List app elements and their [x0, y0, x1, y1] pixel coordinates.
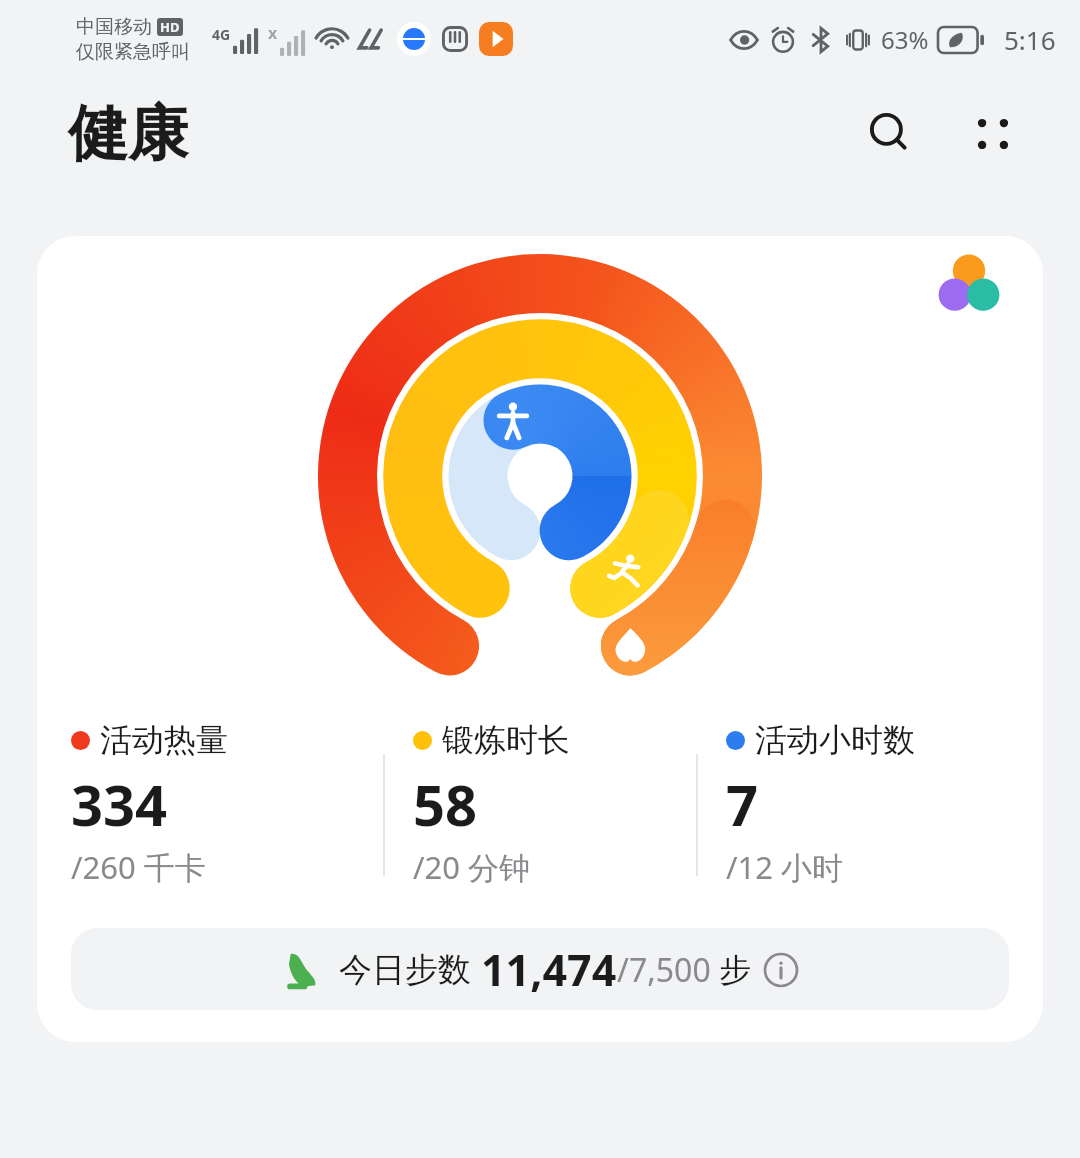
button[interactable]: Health profiles [895, 236, 1043, 332]
staticText: 63% [881, 23, 929, 56]
button[interactable]: 活动热量 [71, 720, 383, 904]
button[interactable]: 活动小时数 [698, 720, 1009, 904]
button[interactable]: Search [854, 97, 928, 171]
staticText: 活动小时数 [755, 720, 915, 760]
staticText: 11,474 [481, 940, 617, 999]
staticText: HD [160, 18, 180, 36]
staticText: 5:16 [1004, 22, 1056, 57]
staticText: 活动热量 [100, 720, 228, 760]
staticText: 4G [212, 25, 231, 44]
button[interactable]: 今日步数 [71, 928, 1009, 1010]
staticText: x [268, 22, 278, 44]
staticText: 334 [71, 766, 168, 842]
staticText: /12 小时 [726, 846, 844, 888]
staticText: /20 分钟 [413, 846, 531, 888]
button[interactable]: 锻炼时长 [385, 720, 696, 904]
staticText: 7 [726, 766, 759, 842]
other: Steps info [763, 952, 799, 988]
staticText: 今日步数 [339, 949, 471, 991]
button[interactable]: 活动热量 [37, 236, 1043, 1042]
staticText: 58 [413, 766, 478, 842]
staticText: 锻炼时长 [442, 720, 570, 760]
staticText: 中国移动 [76, 15, 152, 39]
staticText: 步 [719, 950, 751, 990]
staticText: 仅限紧急呼叫 [76, 40, 190, 64]
staticText: /7,500 [617, 948, 711, 992]
staticText: 健康 [68, 96, 188, 172]
button[interactable]: More options [956, 97, 1030, 171]
staticText: /260 千卡 [71, 846, 206, 888]
